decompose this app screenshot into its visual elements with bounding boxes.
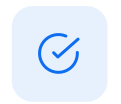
- button[interactable]: Completed: [0, 0, 121, 104]
